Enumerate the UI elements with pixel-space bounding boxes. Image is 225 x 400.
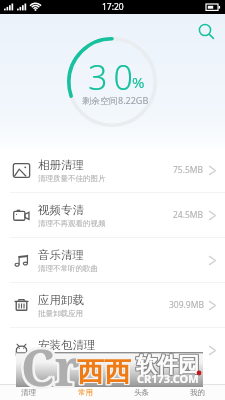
staticText: 头条 — [134, 388, 149, 397]
staticText: 西西 — [78, 355, 132, 389]
staticText: 软件园 — [136, 353, 199, 379]
staticText: 剩余空间8.22GB — [82, 94, 149, 106]
staticText: 常用 — [78, 388, 93, 397]
staticText: 西西 — [78, 356, 132, 390]
staticText: Cr — [23, 335, 83, 400]
staticText: 软件园 — [136, 352, 199, 378]
staticText: 西西 — [77, 355, 131, 389]
button[interactable]: 视频专清 — [0, 193, 225, 237]
staticText: 309.9MB — [169, 299, 204, 311]
staticText: 视频专清 — [38, 203, 84, 217]
button[interactable]: 相册清理 — [0, 148, 225, 192]
staticText: 清理质量不佳的图片 — [38, 174, 106, 183]
staticText: 17:20 — [102, 1, 124, 13]
staticText: 软件园 — [135, 353, 198, 379]
staticText: 西西 — [76, 354, 130, 388]
staticText: 软件园 — [137, 351, 200, 377]
staticText: 西西 — [76, 356, 130, 390]
staticText: 24.5MB — [173, 209, 204, 221]
staticText: 30 — [88, 54, 139, 100]
staticText: Cr — [19, 335, 79, 400]
staticText: 软件园 — [135, 352, 198, 378]
staticText: 我的 — [190, 388, 205, 397]
staticText: 软件园 — [137, 352, 200, 378]
staticText: 相册清理 — [38, 158, 84, 172]
staticText: 软件园 — [135, 351, 198, 377]
staticText: Cr — [23, 331, 83, 399]
staticText: 清理不常听的歌曲 — [38, 264, 98, 273]
staticText: 西西 — [77, 356, 131, 390]
staticText: Cr — [21, 333, 81, 400]
staticText: 音乐清理 — [38, 248, 84, 262]
staticText: 应用卸载 — [38, 293, 84, 307]
staticText: 75.5MB — [173, 164, 204, 176]
button[interactable]: 头条 — [113, 385, 169, 400]
staticText: Cr — [21, 335, 81, 400]
button[interactable]: 安装包清理 — [0, 328, 225, 372]
staticText: 西西 — [76, 355, 130, 389]
button[interactable]: Search — [193, 18, 219, 44]
button[interactable]: 我的 — [169, 385, 225, 400]
staticText: % — [132, 72, 145, 92]
button[interactable]: 音乐清理 — [0, 238, 225, 282]
staticText: Cr — [23, 333, 83, 400]
staticText: 安装包清理 — [38, 338, 96, 352]
button[interactable]: 清理 — [0, 385, 57, 400]
staticText: 软件园 — [136, 351, 199, 377]
staticText: Cr — [19, 331, 79, 399]
staticText: 批量卸载应用 — [38, 309, 83, 318]
button[interactable]: 常用 — [57, 385, 113, 400]
staticText: 西西 — [78, 354, 132, 388]
staticText: Cr — [21, 331, 81, 399]
staticText: 清理不再观看的视频 — [38, 219, 106, 228]
staticText: Cr — [19, 333, 79, 400]
button[interactable]: 应用卸载 — [0, 283, 225, 327]
staticText: 清理 — [21, 388, 36, 397]
staticText: 软件园 — [137, 353, 200, 379]
staticText: 西西 — [77, 354, 131, 388]
staticText: 清理无用的安装包 — [38, 354, 98, 363]
staticText: CR173.COM — [137, 371, 199, 386]
